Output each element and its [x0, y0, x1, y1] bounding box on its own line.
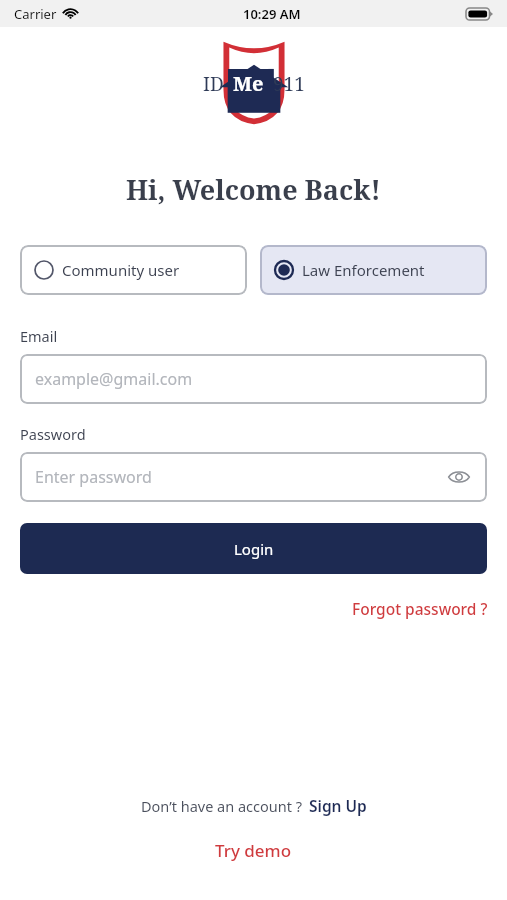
staticText: Forgot password ? [352, 598, 488, 619]
staticText: Sign Up [309, 795, 367, 816]
staticText: Community user [62, 260, 180, 280]
staticText: example@gmail.com [35, 368, 193, 390]
button[interactable]: Forgot password ? [352, 594, 488, 623]
staticText: Me [233, 70, 264, 97]
staticText: Password [20, 424, 86, 444]
button[interactable]: Login [20, 523, 487, 574]
button[interactable]: Community user [20, 245, 247, 295]
staticText: Hi, Welcome Back! [126, 171, 381, 208]
staticText: Carrier [14, 5, 57, 23]
staticText: Try demo [215, 839, 292, 862]
staticText: Don’t have an account ? [141, 796, 303, 816]
button[interactable]: Law Enforcement [260, 245, 487, 295]
staticText: 911 [273, 71, 305, 97]
button[interactable]: Enter password [20, 452, 487, 502]
staticText: Law Enforcement [302, 260, 425, 280]
staticText: Login [234, 539, 274, 559]
staticText: Enter password [35, 466, 152, 488]
staticText: 10:29 AM [243, 5, 301, 23]
button[interactable]: Show password [446, 464, 472, 490]
button[interactable]: Sign Up [309, 795, 367, 816]
button[interactable]: example@gmail.com [20, 354, 487, 404]
staticText: ID [203, 71, 224, 97]
button[interactable]: Try demo [207, 837, 300, 864]
staticText: Email [20, 326, 58, 346]
